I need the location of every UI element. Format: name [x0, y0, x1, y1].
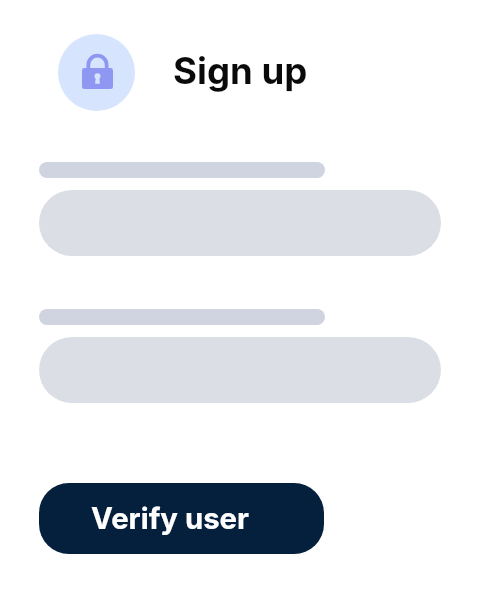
button[interactable]: Input field two — [39, 337, 441, 403]
staticText: Verify user — [91, 501, 249, 536]
other: Secure sign up — [58, 34, 135, 111]
staticText: Sign up — [173, 49, 308, 93]
button[interactable]: Input field one — [39, 190, 441, 256]
button[interactable]: Verify user — [39, 483, 324, 554]
